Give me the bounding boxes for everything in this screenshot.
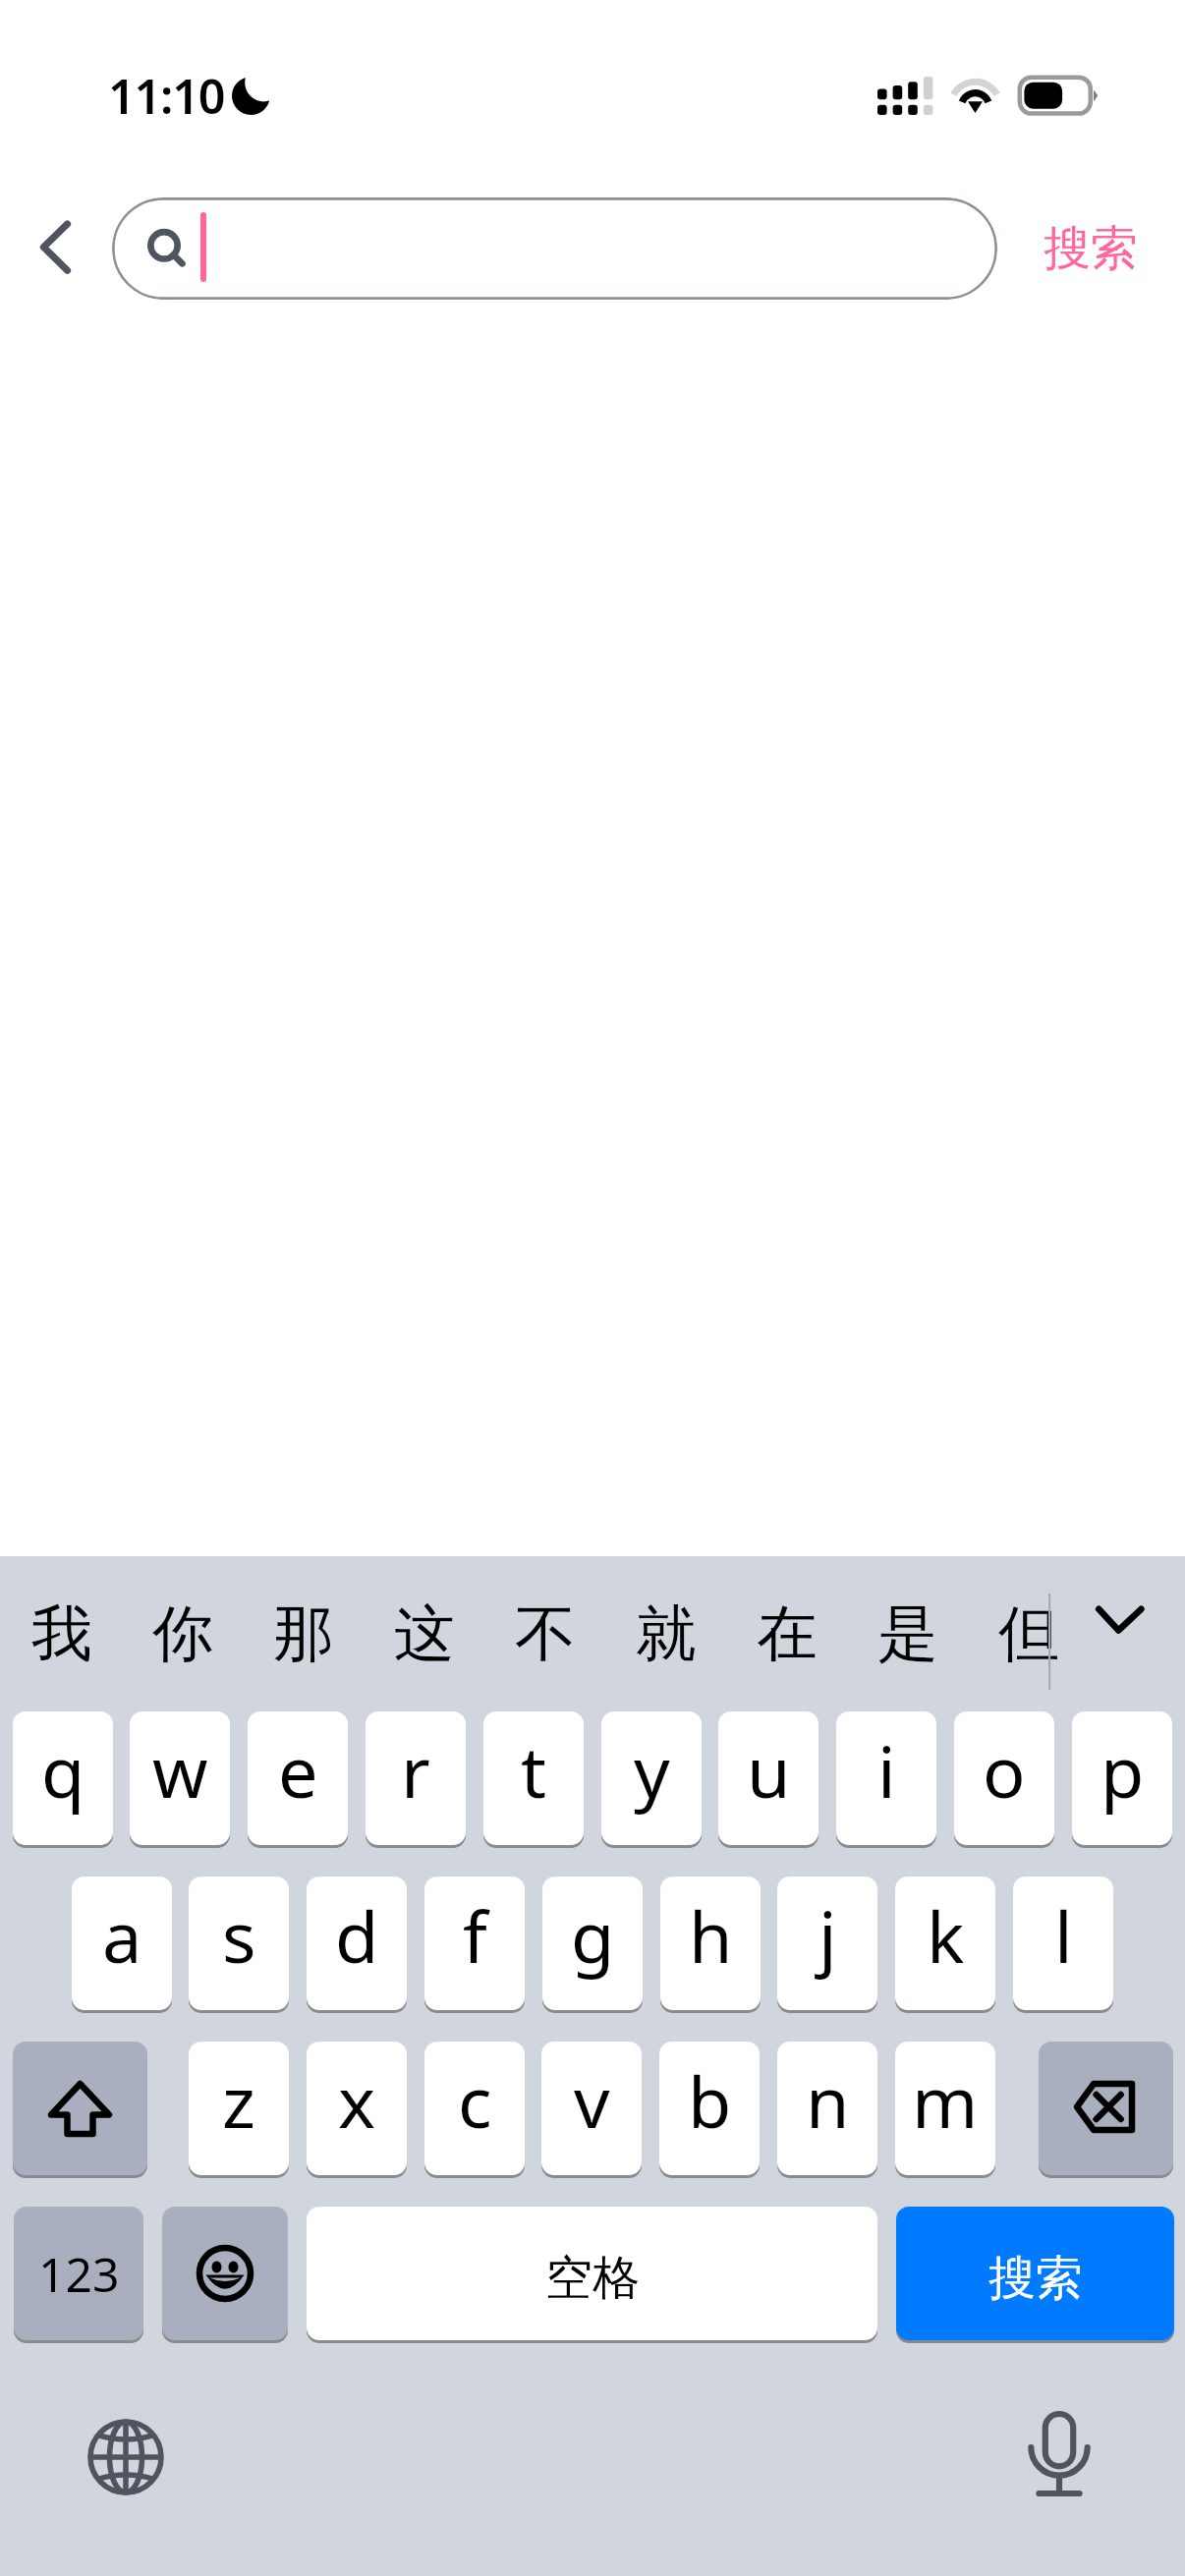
button[interactable]: Collapse suggestions <box>1071 1582 1165 1686</box>
staticText: s <box>222 1887 256 1984</box>
button[interactable]: g <box>542 1876 643 2010</box>
staticText: l <box>1054 1887 1073 1984</box>
button[interactable]: u <box>718 1711 818 1845</box>
staticText: 但 <box>998 1596 1059 1672</box>
button[interactable]: z <box>189 2042 289 2175</box>
staticText: k <box>927 1887 965 1984</box>
button[interactable]: 不 <box>491 1575 599 1693</box>
button[interactable]: t <box>483 1711 584 1845</box>
button[interactable]: 我 <box>8 1575 116 1693</box>
staticText: 这 <box>394 1596 455 1672</box>
button[interactable]: i <box>836 1711 936 1845</box>
staticText: j <box>818 1887 837 1984</box>
button[interactable]: l <box>1013 1876 1113 2010</box>
button[interactable]: p <box>1072 1711 1172 1845</box>
button[interactable]: 但 <box>975 1575 1083 1693</box>
staticText: v <box>574 2052 610 2149</box>
button[interactable]: Backspace <box>1039 2042 1173 2175</box>
button[interactable]: j <box>777 1876 877 2010</box>
button[interactable]: 那 <box>250 1575 358 1693</box>
staticText: g <box>571 1887 615 1984</box>
staticText: x <box>338 2052 376 2149</box>
button[interactable]: 是 <box>854 1575 962 1693</box>
button[interactable]: a <box>72 1876 172 2010</box>
button[interactable]: n <box>777 2042 877 2175</box>
button[interactable]: m <box>895 2042 995 2175</box>
button[interactable]: 在 <box>733 1575 841 1693</box>
staticText: p <box>1100 1722 1145 1819</box>
button[interactable]: 搜索 <box>896 2207 1174 2340</box>
button[interactable]: 空格 <box>307 2207 877 2340</box>
button[interactable] <box>112 197 997 300</box>
button[interactable]: d <box>307 1876 407 2010</box>
staticText: t <box>521 1722 546 1819</box>
staticText: 搜索 <box>988 2249 1083 2308</box>
staticText: 就 <box>636 1596 697 1672</box>
button[interactable]: 你 <box>129 1575 237 1693</box>
button[interactable]: r <box>366 1711 466 1845</box>
staticText: a <box>102 1887 142 1984</box>
button[interactable]: e <box>248 1711 348 1845</box>
button[interactable]: k <box>895 1876 995 2010</box>
staticText: d <box>335 1887 379 1984</box>
button[interactable]: Voice input <box>1015 2411 1103 2509</box>
staticText: w <box>152 1722 208 1819</box>
button[interactable]: 就 <box>612 1575 720 1693</box>
staticText: r <box>401 1722 430 1819</box>
staticText: 不 <box>515 1596 576 1672</box>
staticText: 11:10 <box>108 63 225 128</box>
staticText: z <box>222 2052 255 2149</box>
staticText: 空格 <box>545 2249 640 2308</box>
staticText: n <box>806 2052 850 2149</box>
button[interactable]: y <box>601 1711 702 1845</box>
button[interactable]: Emoji <box>162 2207 288 2340</box>
staticText: 123 <box>38 2242 120 2306</box>
staticText: 那 <box>273 1596 334 1672</box>
staticText: 是 <box>877 1596 938 1672</box>
staticText: h <box>689 1887 733 1984</box>
staticText: m <box>912 2052 979 2149</box>
staticText: f <box>463 1887 487 1984</box>
button[interactable]: Back <box>10 196 88 319</box>
button[interactable]: f <box>424 1876 525 2010</box>
staticText: y <box>634 1722 670 1819</box>
staticText: u <box>747 1722 791 1819</box>
button[interactable]: Change language <box>82 2413 170 2501</box>
button[interactable]: 这 <box>370 1575 479 1693</box>
button[interactable]: w <box>130 1711 230 1845</box>
button[interactable]: b <box>659 2042 760 2175</box>
button[interactable]: x <box>307 2042 407 2175</box>
button[interactable]: h <box>660 1876 761 2010</box>
staticText: b <box>688 2052 732 2149</box>
button[interactable]: Numbers <box>14 2207 143 2340</box>
button[interactable]: v <box>541 2042 642 2175</box>
staticText: i <box>877 1722 896 1819</box>
staticText: 搜索 <box>1044 219 1138 278</box>
staticText: e <box>278 1722 318 1819</box>
staticText: 我 <box>31 1596 92 1672</box>
button[interactable]: q <box>13 1711 113 1845</box>
staticText: 在 <box>757 1596 818 1672</box>
button[interactable]: o <box>954 1711 1054 1845</box>
button[interactable]: s <box>189 1876 289 2010</box>
button[interactable]: 搜索 <box>1012 197 1169 300</box>
staticText: q <box>41 1722 85 1819</box>
button[interactable]: c <box>424 2042 525 2175</box>
staticText: o <box>983 1722 1026 1819</box>
staticText: 你 <box>152 1596 213 1672</box>
staticText: c <box>458 2052 492 2149</box>
button[interactable]: Shift <box>13 2042 147 2175</box>
